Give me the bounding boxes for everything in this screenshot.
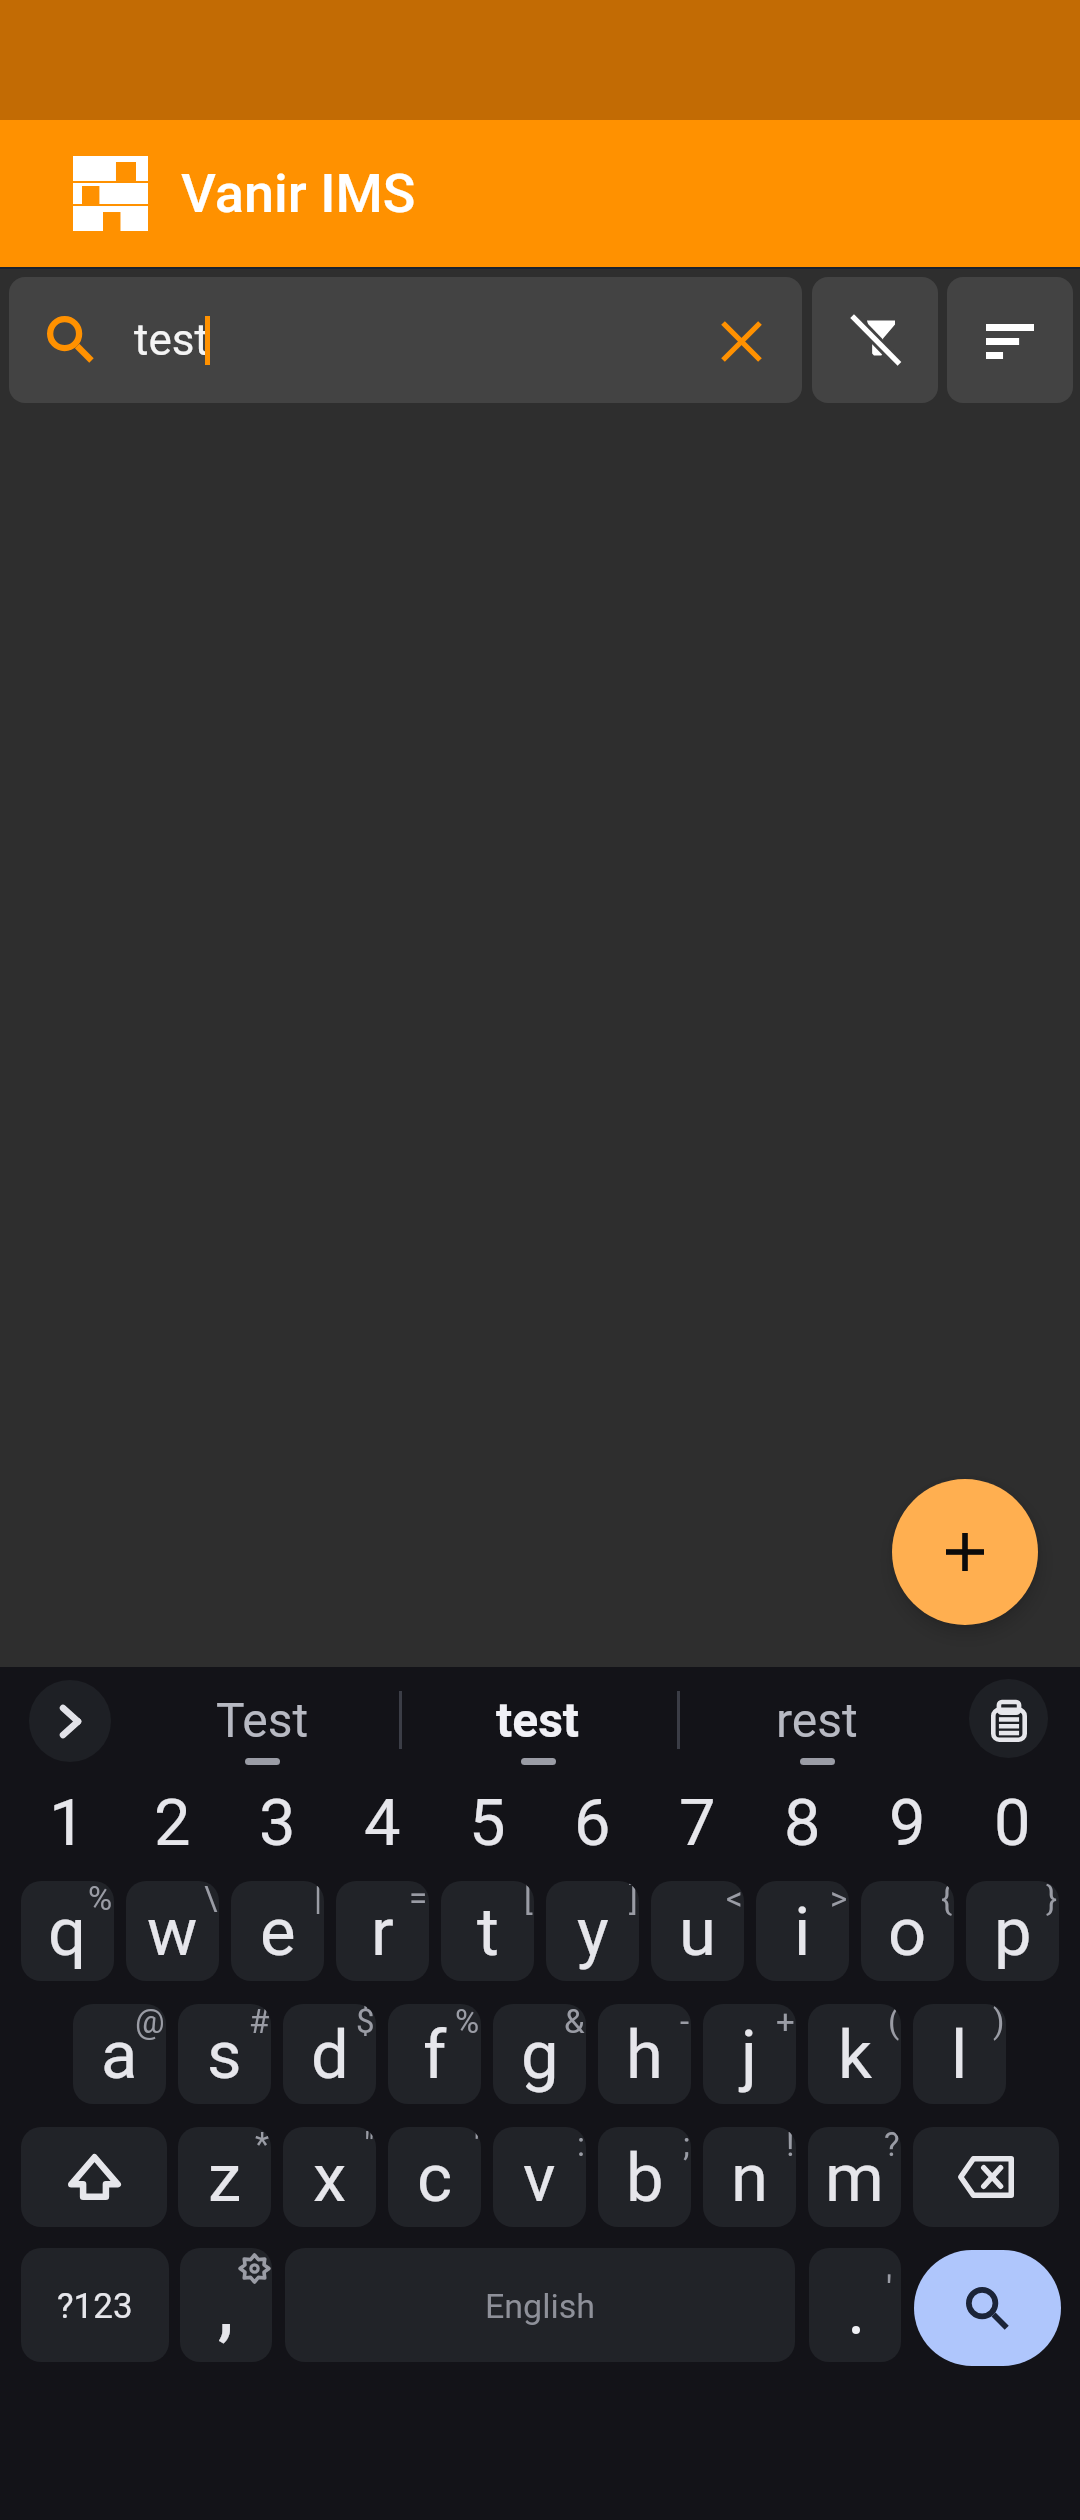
- button[interactable]: Test: [172, 1671, 352, 1785]
- button[interactable]: 8: [756, 1785, 849, 1851]
- button[interactable]: ': [388, 2127, 481, 2227]
- button[interactable]: }: [966, 1881, 1059, 1981]
- button[interactable]: %: [388, 2004, 481, 2104]
- staticText: ?123: [57, 2286, 133, 2327]
- staticText: test: [134, 314, 209, 366]
- button[interactable]: Clear search: [699, 299, 783, 383]
- staticText: %: [455, 2004, 480, 2041]
- button[interactable]: ?: [808, 2127, 901, 2227]
- staticText: o: [888, 1893, 927, 1972]
- staticText: 7: [679, 1785, 716, 1851]
- button[interactable]: More suggestions: [29, 1680, 111, 1762]
- staticText: ?: [884, 2127, 900, 2164]
- button[interactable]: :: [493, 2127, 586, 2227]
- button[interactable]: ;: [598, 2127, 691, 2227]
- staticText: h: [626, 2016, 663, 2095]
- staticText: }: [1046, 1881, 1058, 1918]
- button[interactable]: Add item: [892, 1479, 1038, 1625]
- button[interactable]: 0: [966, 1785, 1059, 1851]
- staticText: ': [474, 2127, 480, 2164]
- button[interactable]: ?123: [21, 2248, 169, 2362]
- staticText: d: [311, 2016, 349, 2095]
- staticText: -: [680, 2004, 690, 2041]
- button[interactable]: ': [809, 2248, 901, 2362]
- button[interactable]: 1: [21, 1785, 114, 1851]
- button[interactable]: 7: [651, 1785, 744, 1851]
- staticText: ]: [629, 1881, 638, 1918]
- staticText: n: [731, 2139, 769, 2218]
- staticText: 5: [469, 1785, 506, 1851]
- button[interactable]: ): [913, 2004, 1006, 2104]
- staticText: @: [135, 2004, 165, 2041]
- button[interactable]: 6: [546, 1785, 639, 1851]
- button[interactable]: 2: [126, 1785, 219, 1851]
- staticText: w: [147, 1893, 198, 1972]
- button[interactable]: \: [126, 1881, 219, 1981]
- button[interactable]: 5: [441, 1785, 534, 1851]
- staticText: #: [249, 2004, 270, 2041]
- button[interactable]: Sort: [947, 277, 1073, 403]
- button[interactable]: -: [598, 2004, 691, 2104]
- button[interactable]: test: [9, 277, 802, 403]
- staticText: :: [577, 2127, 585, 2164]
- button[interactable]: (: [808, 2004, 901, 2104]
- button[interactable]: Backspace: [913, 2127, 1059, 2227]
- button[interactable]: Filter off: [812, 277, 938, 403]
- button[interactable]: ": [283, 2127, 376, 2227]
- staticText: ': [886, 2269, 893, 2311]
- button[interactable]: ]: [546, 1881, 639, 1981]
- staticText: m: [825, 2139, 884, 2218]
- staticText: 0: [994, 1785, 1031, 1851]
- staticText: g: [521, 2016, 559, 2095]
- staticText: b: [626, 2139, 664, 2218]
- button[interactable]: ,: [180, 2248, 272, 2362]
- staticText: +: [776, 2004, 795, 2041]
- button[interactable]: $: [283, 2004, 376, 2104]
- staticText: y: [577, 1893, 609, 1972]
- button[interactable]: 3: [231, 1785, 324, 1851]
- button[interactable]: !: [703, 2127, 796, 2227]
- button[interactable]: Clipboard: [969, 1679, 1048, 1758]
- staticText: q: [48, 1893, 87, 1972]
- button[interactable]: English: [285, 2248, 795, 2362]
- staticText: 3: [259, 1785, 296, 1851]
- button[interactable]: Shift: [21, 2127, 167, 2227]
- staticText: \: [204, 1881, 218, 1918]
- staticText: |: [314, 1881, 323, 1918]
- staticText: f: [423, 2016, 447, 2095]
- button[interactable]: =: [336, 1881, 429, 1981]
- staticText: j: [741, 2016, 758, 2095]
- button[interactable]: +: [703, 2004, 796, 2104]
- staticText: Test: [216, 1692, 309, 1748]
- staticText: Vanir IMS: [181, 162, 416, 225]
- button[interactable]: <: [651, 1881, 744, 1981]
- staticText: $: [356, 2004, 375, 2041]
- button[interactable]: {: [861, 1881, 954, 1981]
- staticText: test: [496, 1692, 580, 1748]
- staticText: ): [993, 2004, 1005, 2041]
- button[interactable]: 4: [336, 1785, 429, 1851]
- button[interactable]: Search: [914, 2250, 1061, 2366]
- button[interactable]: rest: [727, 1671, 907, 1785]
- staticText: 4: [364, 1785, 401, 1851]
- button[interactable]: 9: [861, 1785, 954, 1851]
- staticText: (: [888, 2004, 900, 2041]
- staticText: English: [485, 2286, 596, 2326]
- button[interactable]: %: [21, 1881, 114, 1981]
- staticText: ,: [218, 2267, 234, 2349]
- staticText: z: [208, 2139, 242, 2218]
- staticText: 2: [154, 1785, 191, 1851]
- staticText: a: [101, 2016, 138, 2095]
- button[interactable]: [: [441, 1881, 534, 1981]
- button[interactable]: *: [178, 2127, 271, 2227]
- button[interactable]: @: [73, 2004, 166, 2104]
- staticText: [: [524, 1881, 533, 1918]
- staticText: v: [523, 2139, 556, 2218]
- staticText: e: [260, 1893, 296, 1972]
- button[interactable]: test: [448, 1671, 628, 1785]
- staticText: <: [726, 1881, 743, 1918]
- button[interactable]: &: [493, 2004, 586, 2104]
- button[interactable]: |: [231, 1881, 324, 1981]
- button[interactable]: >: [756, 1881, 849, 1981]
- button[interactable]: #: [178, 2004, 271, 2104]
